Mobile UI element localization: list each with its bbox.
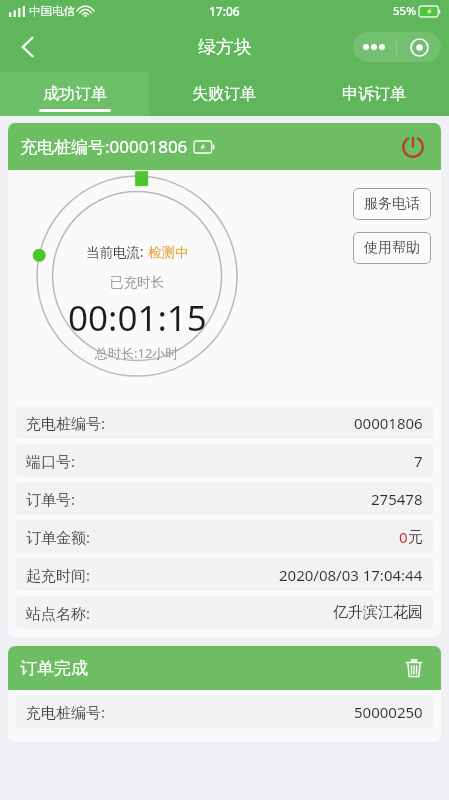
button[interactable]: 订单号:: [16, 482, 433, 515]
staticText: 订单金额:: [26, 527, 91, 547]
button[interactable]: Close: [397, 32, 441, 62]
button[interactable]: 使用帮助: [353, 232, 431, 264]
staticText: 使用帮助: [364, 239, 420, 257]
staticText: 00:01:15: [68, 294, 207, 342]
staticText: 端口号:: [26, 451, 76, 471]
staticText: 7: [414, 451, 423, 471]
button[interactable]: Power off: [397, 131, 429, 163]
staticText: 充电桩编号:00001806: [20, 135, 188, 158]
staticText: 00001806: [354, 413, 423, 433]
staticText: 订单完成: [20, 658, 88, 679]
staticText: 0: [399, 527, 408, 547]
staticText: 站点名称:: [26, 603, 91, 623]
button[interactable]: 充电桩编号:: [16, 406, 433, 439]
staticText: 55%: [393, 3, 416, 19]
staticText: 失败订单: [192, 84, 256, 104]
staticText: 申诉订单: [342, 84, 406, 104]
staticText: 成功订单: [43, 84, 107, 104]
staticText: 17:06: [209, 3, 240, 19]
button[interactable]: 申诉订单: [299, 72, 449, 116]
staticText: 275478: [371, 489, 423, 509]
staticText: 当前电流:: [86, 243, 148, 261]
staticText: 元: [408, 528, 423, 547]
button[interactable]: 充电桩编号:00001806: [8, 123, 441, 170]
button[interactable]: Back: [8, 27, 48, 67]
staticText: 2020/08/03 17:04:44: [279, 565, 423, 585]
staticText: 订单号:: [26, 489, 76, 509]
button[interactable]: 订单完成: [8, 646, 441, 690]
staticText: 中国电信: [29, 4, 75, 18]
button[interactable]: 端口号:: [16, 444, 433, 477]
button[interactable]: 订单金额:: [16, 520, 433, 553]
button[interactable]: 成功订单: [0, 72, 149, 116]
staticText: 绿方块: [198, 36, 252, 59]
staticText: 已充时长: [110, 274, 164, 291]
staticText: 总时长:12小时: [95, 344, 179, 362]
staticText: 服务电话: [364, 195, 420, 213]
staticText: 检测中: [148, 244, 189, 261]
staticText: 亿升滨江花园: [333, 603, 423, 622]
button[interactable]: Delete order: [399, 653, 429, 683]
button[interactable]: Menu: [353, 32, 396, 62]
button[interactable]: 站点名称:: [16, 596, 433, 629]
button[interactable]: 失败订单: [149, 72, 299, 116]
staticText: 50000250: [354, 702, 423, 722]
button[interactable]: 起充时间:: [16, 558, 433, 591]
staticText: 充电桩编号:: [26, 702, 106, 722]
button[interactable]: 服务电话: [353, 188, 431, 220]
button[interactable]: 充电桩编号:: [16, 695, 433, 728]
staticText: 起充时间:: [26, 565, 91, 585]
staticText: 充电桩编号:: [26, 413, 106, 433]
